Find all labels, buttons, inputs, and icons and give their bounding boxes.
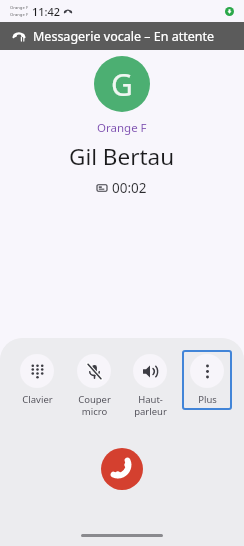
staticText: Orange F xyxy=(10,5,29,11)
button[interactable]: Plus xyxy=(182,350,232,410)
staticText: 00:02 xyxy=(112,179,147,197)
button[interactable]: Messagerie vocale – En attente xyxy=(0,22,244,50)
button[interactable]: Clavier xyxy=(12,350,62,410)
staticText: Messagerie vocale – En attente xyxy=(33,28,215,45)
staticText: Couper micro xyxy=(78,393,111,418)
button[interactable]: Haut- parleur xyxy=(125,350,175,422)
button[interactable]: Raccrocher xyxy=(101,448,143,490)
staticText: Orange F xyxy=(10,12,29,18)
button[interactable]: Couper micro xyxy=(69,350,119,422)
staticText: Clavier xyxy=(22,393,53,406)
staticText: Gil Bertau xyxy=(69,141,175,172)
staticText: Haut- parleur xyxy=(134,393,167,418)
staticText: 11:42 xyxy=(32,4,61,19)
staticText: G xyxy=(111,64,133,105)
staticText: Orange F xyxy=(97,120,147,136)
staticText: Plus xyxy=(198,393,217,406)
